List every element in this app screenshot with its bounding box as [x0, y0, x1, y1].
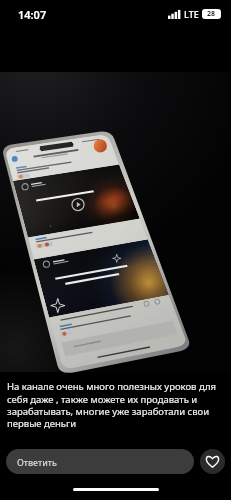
button[interactable]: Like — [200, 449, 225, 474]
staticText: На канале очень много полезных уроков дл… — [7, 380, 224, 429]
staticText: Ответить — [17, 456, 57, 468]
staticText: LTE — [184, 8, 199, 20]
staticText: 28 — [207, 9, 216, 19]
staticText: 14:07 — [18, 7, 47, 22]
button[interactable]: Ответить — [6, 449, 194, 474]
